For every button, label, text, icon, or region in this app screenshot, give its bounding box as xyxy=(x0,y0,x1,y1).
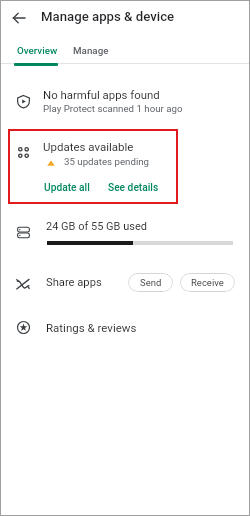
staticText: Send xyxy=(140,277,162,288)
button[interactable]: Update all xyxy=(41,182,93,194)
staticText: 35 updates pending xyxy=(64,156,150,167)
staticText: Manage xyxy=(73,45,109,56)
button[interactable]: Receive xyxy=(180,273,235,292)
staticText: No harmful apps found xyxy=(43,88,160,101)
staticText: Overview xyxy=(17,45,58,56)
staticText: 24 GB of 55 GB used xyxy=(46,220,147,233)
button[interactable]: Send xyxy=(128,273,173,292)
button[interactable]: Overview xyxy=(11,43,64,58)
staticText: Manage apps & device xyxy=(41,9,175,24)
button[interactable]: Back xyxy=(11,10,27,26)
staticText: Ratings & reviews xyxy=(46,321,137,334)
staticText: Update all xyxy=(44,182,90,194)
button[interactable]: Ratings & reviews xyxy=(0,314,250,342)
button[interactable]: No harmful apps found xyxy=(0,82,250,122)
staticText: See details xyxy=(108,182,159,194)
button[interactable]: See details xyxy=(105,182,162,194)
staticText: Updates available xyxy=(43,140,134,153)
button[interactable]: 24 GB of 55 GB used xyxy=(0,215,250,255)
staticText: Receive xyxy=(191,277,224,288)
button[interactable]: Manage xyxy=(67,43,115,58)
staticText: Play Protect scanned 1 hour ago xyxy=(43,103,183,114)
staticText: Share apps xyxy=(46,276,102,289)
